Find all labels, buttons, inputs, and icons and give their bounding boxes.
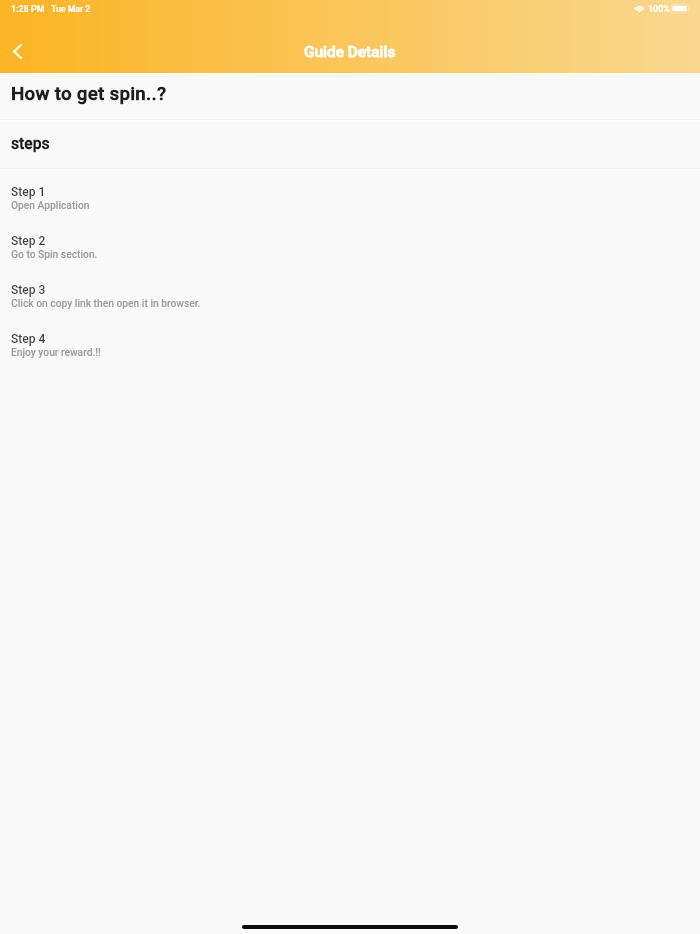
- staticText: Click on copy link then open it in brows…: [11, 297, 201, 309]
- staticText: Enjoy your reward.!!: [11, 346, 101, 358]
- staticText: Step 4: [11, 332, 46, 346]
- staticText: steps: [11, 134, 50, 152]
- staticText: How to get spin..?: [11, 83, 167, 105]
- button[interactable]: Step 4: [0, 315, 700, 364]
- staticText: Go to Spin section.: [11, 248, 98, 260]
- staticText: 1:28 PM: [11, 4, 45, 15]
- button[interactable]: Back: [0, 30, 34, 73]
- staticText: Step 1: [11, 185, 46, 199]
- staticText: Tue Mar 2: [51, 4, 91, 14]
- staticText: Step 3: [11, 283, 46, 297]
- button[interactable]: Step 2: [0, 217, 700, 266]
- staticText: Guide Details: [304, 43, 396, 61]
- staticText: 100%: [648, 4, 670, 15]
- staticText: Open Application: [11, 199, 90, 211]
- staticText: Step 2: [11, 234, 46, 248]
- button[interactable]: Step 3: [0, 266, 700, 315]
- button[interactable]: Step 1: [0, 168, 700, 217]
